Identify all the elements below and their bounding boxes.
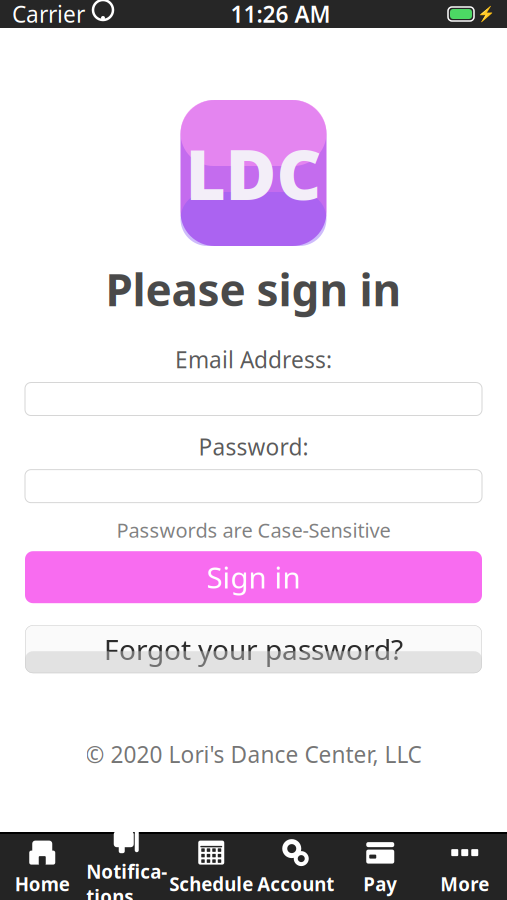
staticText: Pay xyxy=(363,872,397,896)
staticText: Passwords are Case-Sensitive xyxy=(116,517,390,543)
staticText: Please sign in xyxy=(105,260,401,318)
button[interactable]: Home xyxy=(0,834,84,900)
button[interactable]: Pay xyxy=(338,834,422,900)
staticText: Password: xyxy=(198,431,308,462)
staticText: 11:26 AM xyxy=(230,0,330,29)
button[interactable]: Schedule xyxy=(169,834,253,900)
staticText: Account xyxy=(257,872,334,896)
button[interactable]: More xyxy=(422,834,507,900)
staticText: Forgot your password? xyxy=(104,631,403,668)
button[interactable]: Notifications xyxy=(84,834,169,900)
staticText: Schedule xyxy=(169,872,253,896)
staticText: Home xyxy=(15,872,70,896)
staticText: Carrier xyxy=(12,0,85,29)
staticText: More xyxy=(440,872,489,896)
button[interactable]: Account xyxy=(253,834,338,900)
staticText: Email Address: xyxy=(175,344,332,374)
button[interactable]: Sign in xyxy=(25,551,482,603)
staticText: © 2020 Lori's Dance Center, LLC xyxy=(85,739,421,769)
staticText: Notifications xyxy=(86,859,167,900)
button[interactable]: Forgot your password? xyxy=(25,625,482,673)
staticText: Sign in xyxy=(206,558,300,597)
staticText: LDC xyxy=(185,127,321,219)
staticText: ⚡ xyxy=(477,6,495,22)
